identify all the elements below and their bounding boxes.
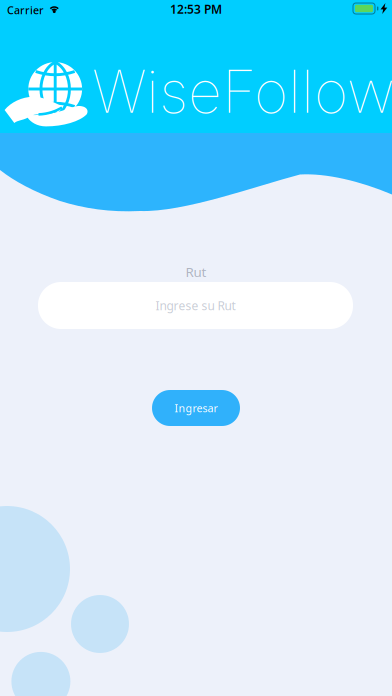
staticText: Rut bbox=[185, 263, 206, 281]
button[interactable]: Ingresar bbox=[152, 390, 240, 426]
staticText: Ingresar bbox=[174, 401, 217, 415]
staticText: Ingrese su Rut bbox=[155, 297, 235, 313]
staticText: Carrier bbox=[7, 3, 44, 17]
staticText: WiseFollow bbox=[92, 56, 392, 127]
staticText: 12:53 PM bbox=[170, 1, 222, 17]
